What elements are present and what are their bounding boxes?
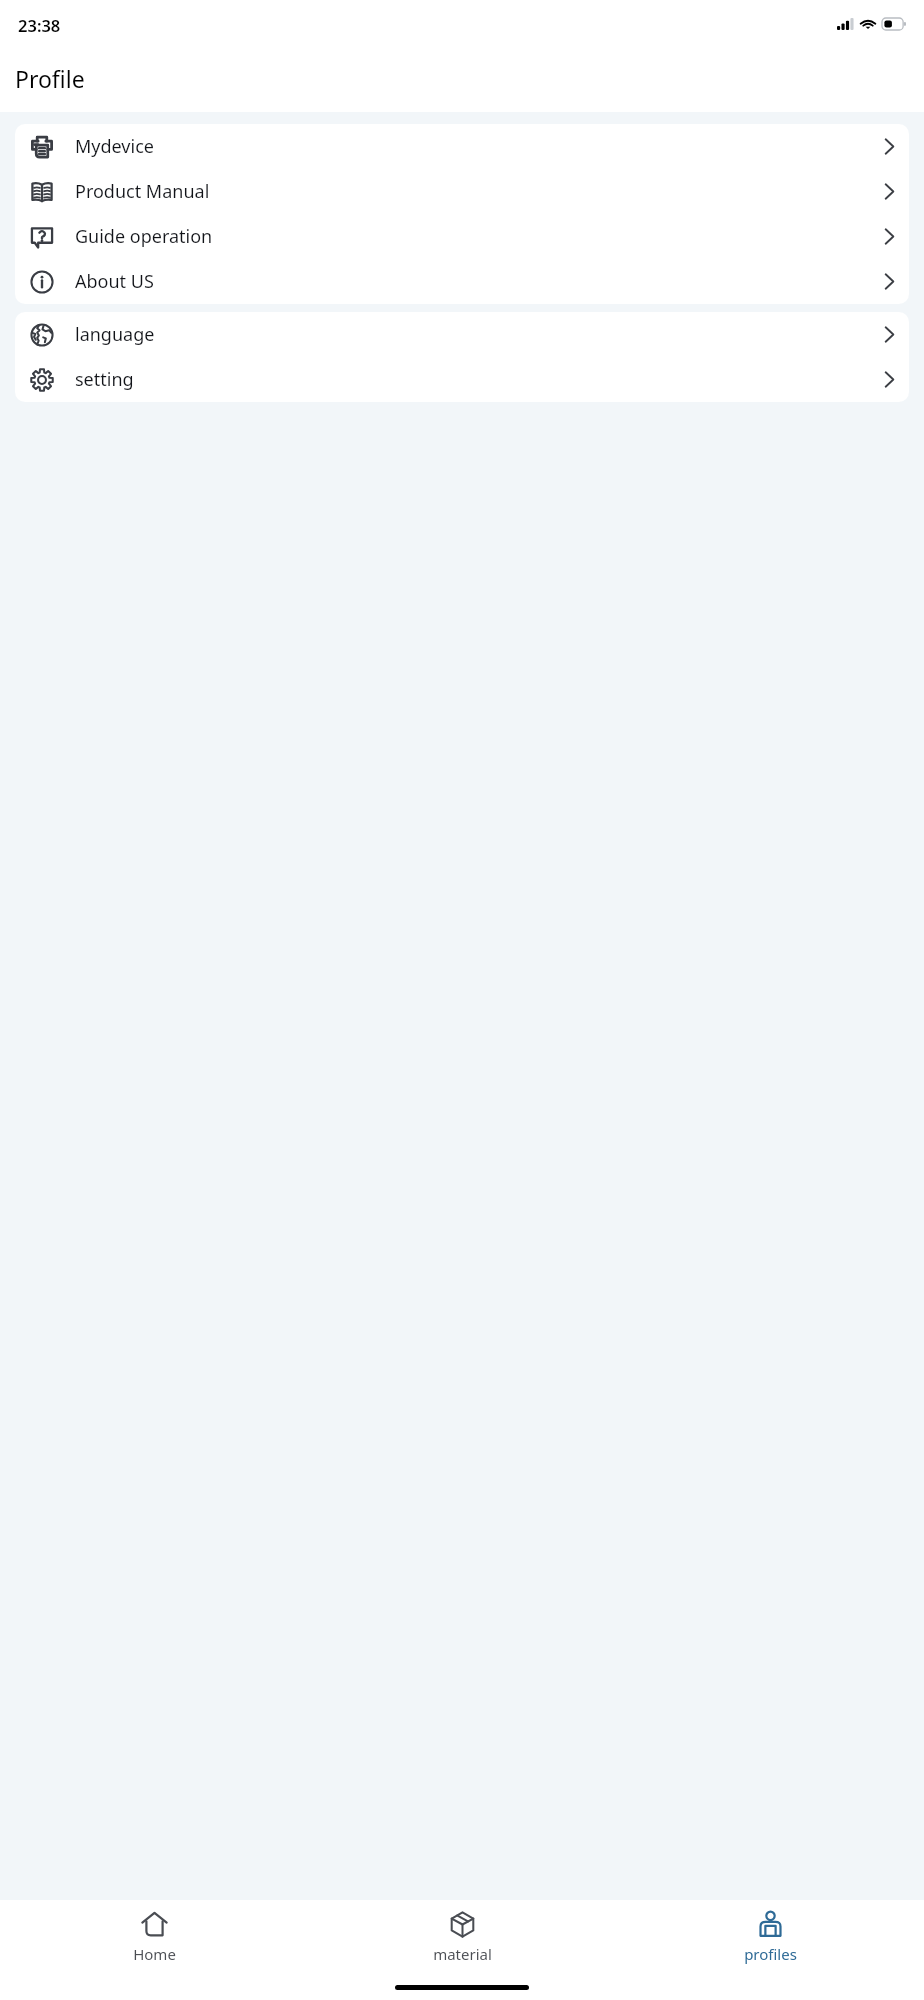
staticText: Profile bbox=[15, 63, 85, 94]
staticText: About US bbox=[75, 269, 154, 294]
button[interactable]: Mydevice bbox=[15, 124, 909, 169]
staticText: setting bbox=[75, 367, 134, 392]
staticText: profiles bbox=[744, 1944, 797, 1964]
button[interactable]: About US bbox=[15, 259, 909, 304]
staticText: Home bbox=[133, 1944, 176, 1964]
staticText: language bbox=[75, 322, 155, 347]
staticText: Mydevice bbox=[75, 134, 154, 159]
button[interactable]: material bbox=[308, 1900, 616, 1978]
staticText: Product Manual bbox=[75, 179, 210, 204]
button[interactable]: language bbox=[15, 312, 909, 357]
staticText: material bbox=[433, 1944, 492, 1964]
staticText: Guide operation bbox=[75, 224, 213, 249]
button[interactable]: Guide operation bbox=[15, 214, 909, 259]
button[interactable]: Home bbox=[0, 1900, 308, 1978]
button[interactable]: setting bbox=[15, 357, 909, 402]
button[interactable]: Product Manual bbox=[15, 169, 909, 214]
staticText: 23:38 bbox=[18, 14, 61, 36]
button[interactable]: profiles bbox=[616, 1900, 924, 1978]
